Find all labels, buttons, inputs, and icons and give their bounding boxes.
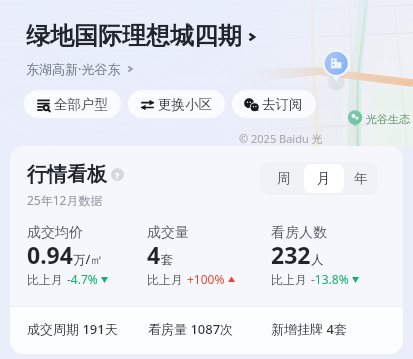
button[interactable]: 年 bbox=[344, 164, 378, 193]
staticText: +100% bbox=[187, 271, 225, 287]
staticText: 月 bbox=[317, 170, 331, 187]
staticText: 套 bbox=[161, 252, 174, 268]
button[interactable]: 更换小区 bbox=[128, 90, 225, 118]
button[interactable]: 月 bbox=[304, 164, 344, 193]
staticText: 看房量 1087次 bbox=[148, 320, 271, 338]
staticText: 比上月 bbox=[271, 272, 307, 287]
staticText: 比上月 bbox=[27, 272, 63, 287]
staticText: 去订阅 bbox=[262, 96, 303, 113]
staticText: 光谷生态 bbox=[366, 112, 410, 126]
button[interactable]: 全部户型 bbox=[24, 90, 121, 118]
staticText: 万/㎡ bbox=[73, 251, 103, 268]
button[interactable]: 东湖高新·光谷东 bbox=[26, 60, 134, 78]
staticText: 成交均价 bbox=[27, 224, 83, 242]
staticText: ? bbox=[115, 169, 120, 181]
staticText: 0.94 bbox=[27, 239, 73, 270]
staticText: 看房人数 bbox=[271, 224, 327, 242]
staticText: 周 bbox=[277, 170, 291, 187]
button[interactable]: 去订阅 bbox=[232, 90, 316, 118]
staticText: 232 bbox=[271, 239, 311, 270]
staticText: 4 bbox=[147, 239, 161, 270]
staticText: 成交周期 191天 bbox=[27, 320, 148, 338]
staticText: 新增挂牌 4套 bbox=[271, 320, 347, 338]
staticText: © 2025 Baidu 光 bbox=[239, 131, 323, 146]
staticText: 比上月 bbox=[147, 272, 183, 287]
staticText: 更换小区 bbox=[158, 96, 212, 113]
staticText: 25年12月数据 bbox=[27, 192, 103, 208]
staticText: 全部户型 bbox=[54, 96, 108, 113]
button[interactable]: 帮助 bbox=[111, 168, 124, 181]
button[interactable]: 绿地国际理想城四期 bbox=[26, 21, 257, 51]
staticText: 行情看板 bbox=[27, 162, 107, 187]
staticText: 年 bbox=[354, 170, 368, 187]
staticText: 东湖高新·光谷东 bbox=[26, 60, 121, 78]
staticText: -4.7% bbox=[67, 271, 98, 287]
staticText: 成交量 bbox=[147, 224, 189, 242]
staticText: 人 bbox=[311, 252, 324, 268]
staticText: -13.8% bbox=[311, 271, 349, 287]
staticText: 绿地国际理想城四期 bbox=[26, 21, 242, 51]
button[interactable]: 周 bbox=[264, 164, 304, 193]
